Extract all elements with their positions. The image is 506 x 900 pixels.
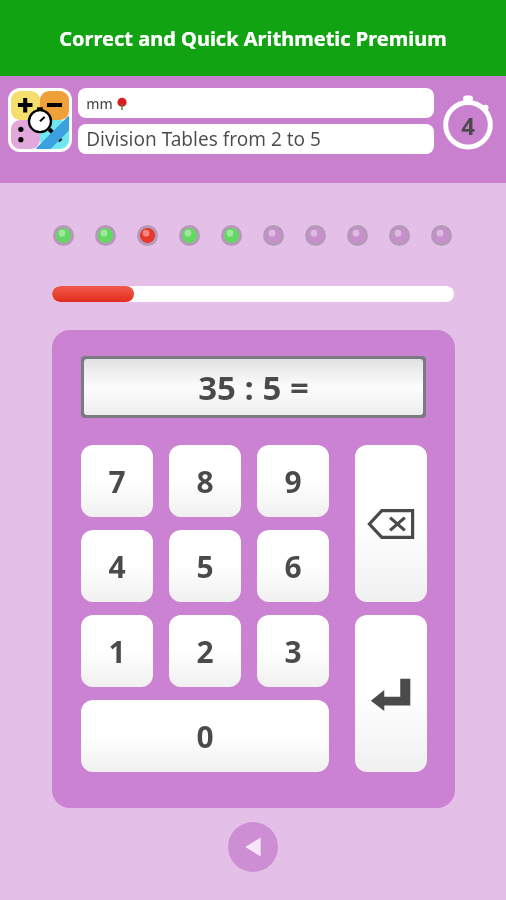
button[interactable]: 8 — [169, 445, 241, 517]
button[interactable]: Division Tables from 2 to 5 — [78, 124, 434, 154]
staticText: 4 — [461, 109, 475, 142]
staticText: 8 — [196, 461, 214, 502]
button[interactable]: 9 — [257, 445, 329, 517]
button[interactable]: 5 — [169, 530, 241, 602]
button[interactable]: 4 — [81, 530, 153, 602]
button[interactable]: mm — [78, 88, 434, 118]
staticText: Division Tables from 2 to 5 — [86, 126, 321, 152]
button[interactable]: 7 — [81, 445, 153, 517]
button[interactable]: 2 — [169, 615, 241, 687]
button[interactable]: 6 — [257, 530, 329, 602]
button[interactable]: Backspace — [355, 445, 427, 602]
staticText: mm — [86, 94, 113, 113]
button[interactable]: Enter — [355, 615, 427, 772]
staticText: 4 — [108, 546, 126, 587]
button[interactable]: Back — [228, 822, 278, 872]
button[interactable]: 0 — [81, 700, 329, 772]
button[interactable]: Timer — [437, 90, 499, 152]
button[interactable]: 3 — [257, 615, 329, 687]
staticText: 1 — [108, 631, 126, 672]
staticText: 3 — [284, 631, 302, 672]
staticText: 7 — [108, 461, 126, 502]
staticText: 0 — [196, 716, 214, 757]
staticText: 35 : 5 = — [198, 365, 309, 410]
button[interactable]: 1 — [81, 615, 153, 687]
staticText: Correct and Quick Arithmetic Premium — [59, 25, 447, 52]
staticText: 9 — [284, 461, 302, 502]
staticText: 5 — [196, 546, 214, 587]
staticText: 6 — [284, 546, 302, 587]
staticText: 2 — [196, 631, 214, 672]
button[interactable]: App icon — [8, 88, 72, 152]
button[interactable]: 35 : 5 = — [84, 359, 423, 415]
